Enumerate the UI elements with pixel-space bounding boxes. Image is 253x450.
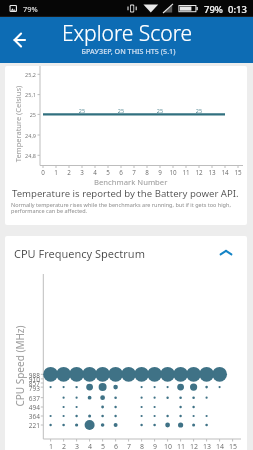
staticText: 25,1 <box>6 91 36 98</box>
staticText: 13 <box>197 168 227 177</box>
staticText: 988 <box>12 371 40 380</box>
staticText: 5 <box>95 442 111 450</box>
staticText: 910 <box>12 375 40 384</box>
staticText: 5 <box>93 168 123 177</box>
staticText: 25 <box>184 107 214 114</box>
staticText: 25 <box>145 107 175 114</box>
staticText: 14 <box>212 442 228 450</box>
staticText: 13 <box>199 442 215 450</box>
staticText: 6 <box>108 442 124 450</box>
staticText: 15 <box>225 442 241 450</box>
staticText: 221 <box>12 421 40 430</box>
staticText: 9 <box>145 168 175 177</box>
staticText: CPU Frequency Spectrum <box>14 246 145 261</box>
staticText: 11 <box>173 442 189 450</box>
staticText: 2 <box>54 168 84 177</box>
staticText: 25 <box>6 111 36 118</box>
staticText: 7 <box>121 442 137 450</box>
staticText: 364 <box>12 412 40 421</box>
button[interactable]: CPU Frequency Spectrum <box>5 236 247 270</box>
staticText: Normally temperature rises while the ben… <box>11 201 231 214</box>
staticText: 12 <box>184 168 214 177</box>
staticText: БРАУЗЕР, ON THIS HT5 (5.1) <box>80 46 177 56</box>
staticText: 10 <box>158 168 188 177</box>
staticText: 25 <box>106 107 136 114</box>
staticText: 2 <box>56 442 72 450</box>
staticText: 8 <box>132 168 162 177</box>
staticText: 24,8 <box>6 152 36 159</box>
staticText: 1 <box>41 168 71 177</box>
staticText: 637 <box>12 394 40 403</box>
staticText: 14 <box>210 168 240 177</box>
staticText: CPU Speed (MHz) <box>13 306 27 426</box>
staticText: 1 <box>43 442 59 450</box>
button[interactable]: Back <box>4 25 34 55</box>
staticText: 10 <box>160 442 176 450</box>
staticText: 7 <box>119 168 149 177</box>
staticText: 79% <box>204 3 223 16</box>
staticText: 11 <box>171 168 201 177</box>
staticText: 494 <box>12 403 40 412</box>
staticText: 9 <box>147 442 163 450</box>
staticText: 0:13 <box>228 3 247 16</box>
staticText: 24,9 <box>6 132 36 139</box>
staticText: 25,2 <box>6 71 36 78</box>
staticText: 857 <box>12 379 40 388</box>
staticText: 8 <box>134 442 150 450</box>
other: Collapse <box>217 244 235 262</box>
staticText: 79% <box>23 4 38 14</box>
staticText: 4 <box>80 168 110 177</box>
staticText: 6 <box>106 168 136 177</box>
staticText: 3 <box>67 168 97 177</box>
staticText: 793 <box>12 384 40 393</box>
staticText: Temperature (Celsius) <box>13 66 23 184</box>
staticText: 3 <box>69 442 85 450</box>
staticText: 4 <box>82 442 98 450</box>
staticText: Temperature is reported by the Battery p… <box>12 187 239 200</box>
staticText: 12 <box>186 442 202 450</box>
staticText: 0 <box>28 168 58 177</box>
staticText: Explore Score <box>27 19 227 48</box>
staticText: 25 <box>67 107 97 114</box>
staticText: 15 <box>223 168 247 177</box>
staticText: Benchmark Number <box>94 177 168 187</box>
